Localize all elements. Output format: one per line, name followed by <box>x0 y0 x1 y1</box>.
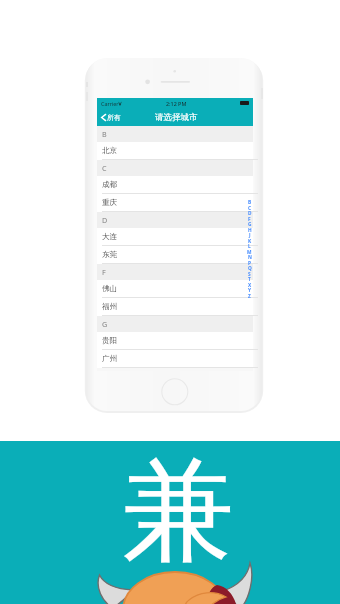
button[interactable]: 东莞 <box>97 246 253 264</box>
staticText: 大连 <box>102 232 118 242</box>
staticText: 广州 <box>102 354 118 364</box>
staticText: 北京 <box>102 146 118 156</box>
staticText: Y <box>248 287 252 294</box>
staticText: Z <box>248 293 251 300</box>
staticText: 福州 <box>102 302 118 312</box>
staticText: N <box>248 254 252 261</box>
staticText: X <box>248 282 252 289</box>
button[interactable]: 北京 <box>97 142 253 160</box>
staticText: F <box>102 267 106 277</box>
staticText: 所有 <box>107 113 121 122</box>
button[interactable]: 贵阳 <box>97 332 253 350</box>
staticText: C <box>102 163 107 173</box>
staticText: J <box>249 232 251 239</box>
staticText: D <box>102 215 108 225</box>
staticText: D <box>248 210 252 217</box>
button[interactable]: 重庆 <box>97 194 253 212</box>
staticText: 佛山 <box>102 284 118 294</box>
staticText: P <box>248 260 251 267</box>
staticText: 2:12 PM <box>166 100 187 107</box>
staticText: Carrier <box>101 100 119 107</box>
staticText: T <box>248 276 251 283</box>
staticText: 请选择城市 <box>155 112 198 123</box>
staticText: 东莞 <box>102 250 118 260</box>
staticText: M <box>247 249 252 256</box>
button[interactable]: 福州 <box>97 298 253 316</box>
staticText: 重庆 <box>102 198 118 208</box>
button[interactable]: 大连 <box>97 228 253 246</box>
staticText: 贵阳 <box>102 336 118 346</box>
staticText: G <box>102 319 108 329</box>
button[interactable]: 所有 <box>97 111 125 124</box>
button[interactable]: Alphabet index <box>246 201 253 301</box>
staticText: S <box>248 271 251 278</box>
staticText: H <box>248 227 252 234</box>
staticText: K <box>248 238 252 245</box>
staticText: L <box>248 243 251 250</box>
staticText: B <box>102 129 107 139</box>
staticText: 兼 <box>122 440 235 582</box>
button[interactable]: 广州 <box>97 350 253 368</box>
staticText: 成都 <box>102 180 118 190</box>
staticText: F <box>248 216 251 223</box>
button[interactable]: 佛山 <box>97 280 253 298</box>
staticText: B <box>248 199 252 206</box>
staticText: Q <box>248 265 252 272</box>
staticText: C <box>248 205 252 212</box>
staticText: G <box>248 221 252 228</box>
button[interactable]: 成都 <box>97 176 253 194</box>
